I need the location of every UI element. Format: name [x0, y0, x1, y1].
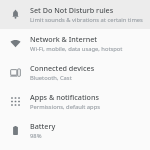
other: Battery — [0, 116, 30, 145]
other: Apps and notifications — [0, 87, 30, 116]
other: Connected devices — [0, 58, 30, 87]
button[interactable]: Battery — [0, 116, 150, 145]
button[interactable]: Apps and notifications — [0, 87, 150, 116]
staticText: Network & Internet — [30, 34, 98, 44]
staticText: Limit sounds & vibrations at certain tim… — [30, 16, 143, 24]
staticText: Battery — [30, 121, 56, 131]
other: Network and Internet — [0, 29, 30, 58]
button[interactable]: Connected devices — [0, 58, 150, 87]
other: Do Not Disturb — [0, 0, 30, 29]
staticText: Bluetooth, Cast — [30, 74, 72, 82]
button[interactable]: Network and Internet — [0, 29, 150, 58]
staticText: 98% — [30, 132, 42, 140]
staticText: Apps & notifications — [30, 92, 99, 102]
staticText: Permissions, default apps — [30, 103, 100, 111]
staticText: Connected devices — [30, 63, 95, 73]
staticText: Wi-Fi, mobile, data usage, hotspot — [30, 45, 123, 53]
staticText: Set Do Not Disturb rules — [30, 5, 114, 15]
button[interactable]: Do Not Disturb — [0, 0, 150, 29]
